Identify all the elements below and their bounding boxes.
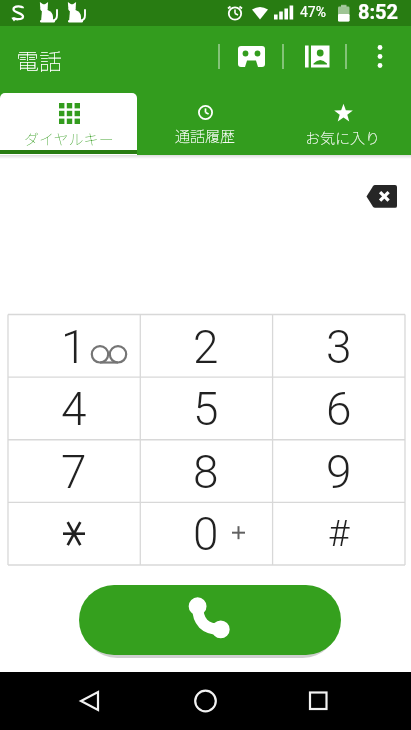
staticText: 3 — [326, 320, 352, 374]
button[interactable]: 5 — [140, 377, 272, 440]
button[interactable]: ダイヤルキー — [0, 93, 137, 155]
staticText: お気に入り — [305, 127, 381, 149]
button[interactable]: 通話履歴 — [137, 93, 274, 155]
button[interactable]: 0 — [140, 502, 272, 565]
button[interactable]: 6 — [273, 377, 405, 440]
button[interactable] — [346, 26, 411, 93]
button[interactable] — [220, 26, 283, 93]
button[interactable] — [357, 177, 405, 217]
staticText: 8 — [193, 445, 219, 499]
staticText: 0 — [193, 507, 219, 561]
button[interactable] — [283, 26, 346, 93]
staticText: ダイヤルキー — [24, 128, 114, 150]
button[interactable]: 2 — [140, 315, 272, 378]
staticText: # — [328, 512, 350, 555]
staticText: 5 — [193, 382, 219, 436]
staticText: 9 — [326, 445, 352, 499]
button[interactable]: 7 — [8, 440, 140, 503]
staticText: 1 — [61, 320, 87, 374]
button[interactable]: 3 — [273, 315, 405, 378]
staticText: 47% — [300, 4, 326, 20]
button[interactable] — [274, 672, 411, 730]
button[interactable] — [137, 672, 274, 730]
staticText: 2 — [193, 320, 219, 374]
staticText: 通話履歴 — [175, 125, 236, 147]
staticText: 6 — [326, 382, 352, 436]
staticText: 電話 — [16, 43, 62, 76]
staticText: 7 — [61, 445, 87, 499]
staticText: 8:52 — [358, 0, 399, 23]
button[interactable]: # — [273, 502, 405, 565]
button[interactable]: 9 — [273, 440, 405, 503]
button[interactable] — [0, 672, 137, 730]
button[interactable]: 4 — [8, 377, 140, 440]
staticText: 4 — [61, 382, 87, 436]
button[interactable]: お気に入り — [274, 93, 411, 155]
button[interactable] — [8, 502, 140, 565]
button[interactable]: 1 — [8, 315, 140, 378]
button[interactable] — [79, 585, 341, 655]
button[interactable]: 8 — [140, 440, 272, 503]
